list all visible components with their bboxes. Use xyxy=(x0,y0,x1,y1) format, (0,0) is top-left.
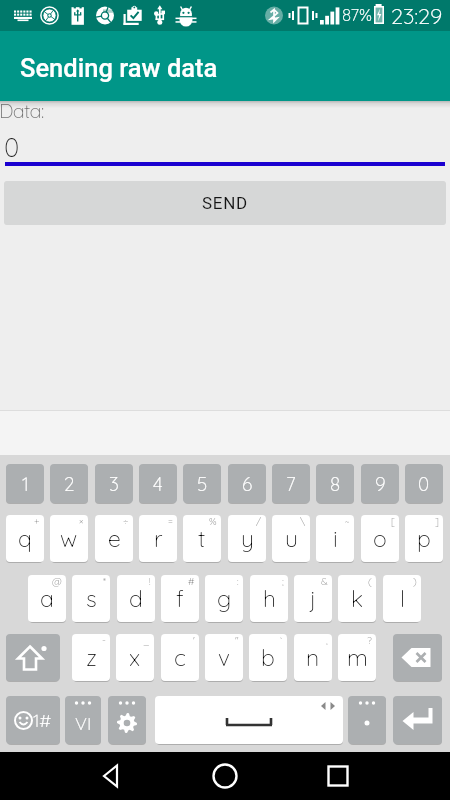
staticText: n xyxy=(306,643,320,672)
button[interactable]: t xyxy=(183,515,221,562)
staticText: p xyxy=(417,524,431,553)
staticText: ~ xyxy=(345,515,350,528)
staticText: VI xyxy=(75,712,92,735)
button[interactable]: 4 xyxy=(139,464,177,503)
button[interactable]: w xyxy=(50,515,88,562)
button[interactable]: Settings xyxy=(108,696,146,744)
button[interactable]: o xyxy=(361,515,399,562)
button[interactable]: n xyxy=(294,634,332,681)
staticText: % xyxy=(209,515,217,528)
button[interactable]: 9 xyxy=(361,464,399,503)
staticText: " xyxy=(235,634,239,647)
button[interactable]: c xyxy=(161,634,199,681)
button[interactable]: g xyxy=(205,575,243,622)
staticText: h xyxy=(263,584,276,613)
staticText: 2 xyxy=(64,472,75,496)
button[interactable]: Backspace xyxy=(393,634,442,681)
button[interactable]: j xyxy=(294,575,332,622)
button[interactable]: e xyxy=(95,515,133,562)
button[interactable]: k xyxy=(338,575,376,622)
staticText: , xyxy=(326,634,328,647)
staticText: l xyxy=(400,584,405,613)
staticText: ! xyxy=(149,575,151,588)
button[interactable]: 2 xyxy=(50,464,88,503)
staticText: w xyxy=(60,524,78,553)
button[interactable]: 8 xyxy=(316,464,354,503)
button[interactable]: p xyxy=(405,515,443,562)
button[interactable]: 6 xyxy=(228,464,266,503)
staticText: u xyxy=(285,524,298,553)
button[interactable]: d xyxy=(117,575,155,622)
staticText: = xyxy=(168,515,173,528)
button[interactable]: z xyxy=(72,634,110,681)
button[interactable]: q xyxy=(6,515,44,562)
staticText: i xyxy=(333,524,338,553)
staticText: r xyxy=(154,524,163,553)
button[interactable]: v xyxy=(205,634,243,681)
staticText: t xyxy=(198,524,206,553)
button[interactable]: Enter xyxy=(393,696,442,744)
button[interactable]: l xyxy=(383,575,421,622)
staticText: 87% xyxy=(342,4,372,25)
staticText: ) xyxy=(413,575,417,588)
staticText: [ xyxy=(391,515,395,528)
staticText: e xyxy=(108,524,121,553)
staticText: m xyxy=(347,643,368,672)
staticText: - xyxy=(102,634,106,647)
button[interactable]: s xyxy=(72,575,110,622)
button[interactable]: i xyxy=(316,515,354,562)
staticText: Sending raw data xyxy=(20,53,218,83)
staticText: 6 xyxy=(242,472,253,496)
button[interactable]: Home xyxy=(201,752,249,800)
staticText: d xyxy=(129,584,143,613)
button[interactable]: y xyxy=(228,515,266,562)
button[interactable]: Space xyxy=(155,696,343,744)
staticText: a xyxy=(40,584,54,613)
button[interactable]: a xyxy=(28,575,66,622)
button[interactable]: 1 xyxy=(6,464,44,503)
button[interactable]: 1# xyxy=(6,696,60,744)
button[interactable]: VI xyxy=(65,696,101,744)
staticText: s xyxy=(86,584,97,613)
staticText: 7 xyxy=(286,472,296,496)
staticText: 3 xyxy=(109,472,119,496)
button[interactable]: Recents xyxy=(314,752,362,800)
staticText: 1# xyxy=(33,709,52,732)
button[interactable]: Back xyxy=(88,752,136,800)
button[interactable]: Shift xyxy=(6,634,60,681)
staticText: k xyxy=(351,584,364,613)
staticText: o xyxy=(373,524,387,553)
staticText: Data: xyxy=(0,98,44,123)
button[interactable]: r xyxy=(139,515,177,562)
staticText: 4 xyxy=(153,472,163,496)
staticText: f xyxy=(176,584,184,613)
button[interactable]: x xyxy=(116,634,154,681)
staticText: # xyxy=(188,575,195,588)
staticText: b xyxy=(261,643,275,672)
button[interactable]: f xyxy=(161,575,199,622)
button[interactable]: SEND xyxy=(4,181,446,225)
button[interactable]: h xyxy=(250,575,288,622)
staticText: ( xyxy=(368,575,372,588)
staticText: _ xyxy=(143,634,150,647)
button[interactable]: m xyxy=(338,634,376,681)
button[interactable]: Period xyxy=(348,696,386,744)
button[interactable]: 5 xyxy=(183,464,221,503)
button[interactable]: u xyxy=(272,515,310,562)
staticText: \ xyxy=(300,515,306,528)
button[interactable]: b xyxy=(249,634,287,681)
staticText: 0 xyxy=(4,131,20,164)
button[interactable]: 0 xyxy=(405,464,443,503)
button[interactable]: 7 xyxy=(272,464,310,503)
staticText: ÷ xyxy=(123,515,129,528)
staticText: v xyxy=(218,643,230,672)
staticText: 23:29 xyxy=(391,2,443,30)
staticText: y xyxy=(241,524,254,553)
staticText: + xyxy=(34,515,40,528)
staticText: 5 xyxy=(197,472,208,496)
staticText: j xyxy=(310,584,317,613)
staticText: 0 xyxy=(418,472,430,496)
button[interactable]: 3 xyxy=(95,464,133,503)
staticText: q xyxy=(18,524,32,553)
staticText: x xyxy=(129,643,141,672)
